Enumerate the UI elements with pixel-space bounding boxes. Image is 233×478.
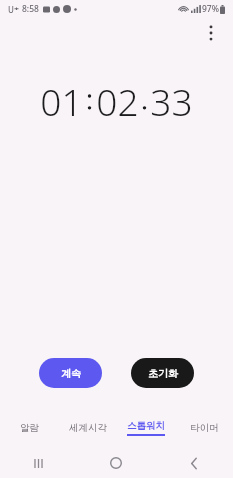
button[interactable]: 타이머 xyxy=(175,416,233,440)
button[interactable]: Recent apps xyxy=(0,448,77,478)
staticText: 02 xyxy=(96,76,139,126)
staticText: 스톱워치 xyxy=(127,420,165,432)
button[interactable]: 스톱워치 xyxy=(117,416,175,440)
staticText: 알람 xyxy=(20,422,39,434)
staticText: 01 xyxy=(40,76,83,126)
staticText: 8:58 xyxy=(22,3,39,15)
staticText: 세계시각 xyxy=(69,422,107,434)
staticText: U xyxy=(8,4,14,15)
button[interactable]: 세계시각 xyxy=(59,416,117,440)
button[interactable]: More options xyxy=(198,20,224,46)
button[interactable]: 초기화 xyxy=(131,358,194,388)
button[interactable]: Home xyxy=(77,448,155,478)
button[interactable]: Back xyxy=(155,448,233,478)
staticText: 타이머 xyxy=(190,422,219,434)
staticText: 계속 xyxy=(61,367,81,380)
staticText: 97% xyxy=(202,3,219,15)
button[interactable]: 알람 xyxy=(0,416,59,440)
staticText: 초기화 xyxy=(148,367,178,380)
staticText: 33 xyxy=(150,76,193,126)
button[interactable]: 계속 xyxy=(39,358,102,388)
